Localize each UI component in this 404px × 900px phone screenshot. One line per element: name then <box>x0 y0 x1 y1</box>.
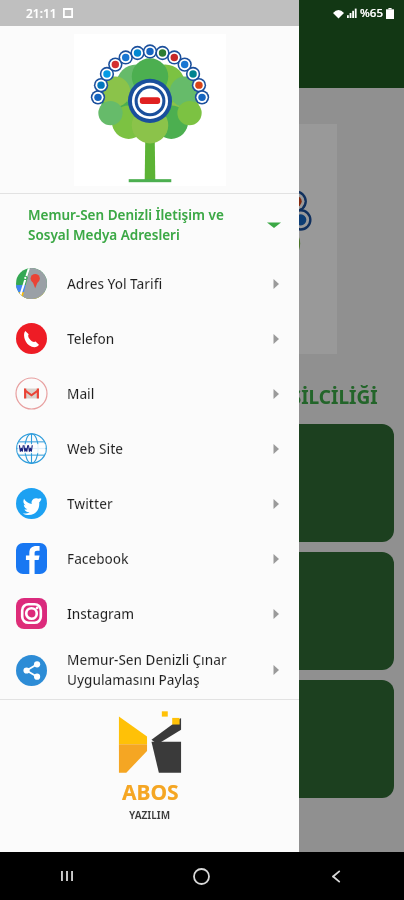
staticText: YAZILIM <box>129 808 171 822</box>
staticText: Memur-Sen Denizli İletişim ve <box>28 206 224 224</box>
staticText: Facebook <box>67 550 129 568</box>
button[interactable]: Memur-Sen Denizli İletişim ve <box>0 194 299 256</box>
button[interactable]: Home <box>134 852 269 900</box>
button[interactable]: Memur-Sen Denizli Çınar <box>0 641 299 699</box>
staticText: ABOS <box>122 778 179 807</box>
button[interactable]: Twitter <box>0 476 299 531</box>
button[interactable]: Araç <box>10 552 394 670</box>
button[interactable]: Back <box>269 852 404 900</box>
staticText: MEMUR-SEN DENİZLİ İL TEMSİLCİLİĞİ <box>26 384 378 410</box>
staticText: İlçeler <box>172 743 233 772</box>
staticText: Adres Yol Tarifi <box>67 275 163 293</box>
staticText: Uygulamasını Paylaş <box>67 671 200 689</box>
button[interactable]: Mail <box>0 366 299 421</box>
staticText: Mail <box>67 385 95 403</box>
button[interactable]: Adres Yol Tarifi <box>0 256 299 311</box>
button[interactable]: Recents <box>0 852 134 900</box>
staticText: Twitter <box>67 495 113 513</box>
staticText: 21:11 <box>26 5 57 21</box>
staticText: Telefon <box>67 330 115 348</box>
staticText: %65 <box>360 5 383 21</box>
staticText: Instagram <box>67 605 135 623</box>
button[interactable]: Web Site <box>0 421 299 476</box>
staticText: Sosyal Medya Adresleri <box>28 226 180 244</box>
button[interactable]: İlçeler <box>10 680 394 798</box>
staticText: 5 Anlaşma <box>170 639 234 657</box>
button[interactable]: Telefon <box>0 311 299 366</box>
button[interactable]: Alışveriş <box>10 424 394 542</box>
button[interactable]: Facebook <box>0 531 299 586</box>
staticText: Web Site <box>67 440 124 458</box>
staticText: Memur-Sen Denizli Çınar <box>67 651 227 669</box>
button[interactable]: Instagram <box>0 586 299 641</box>
